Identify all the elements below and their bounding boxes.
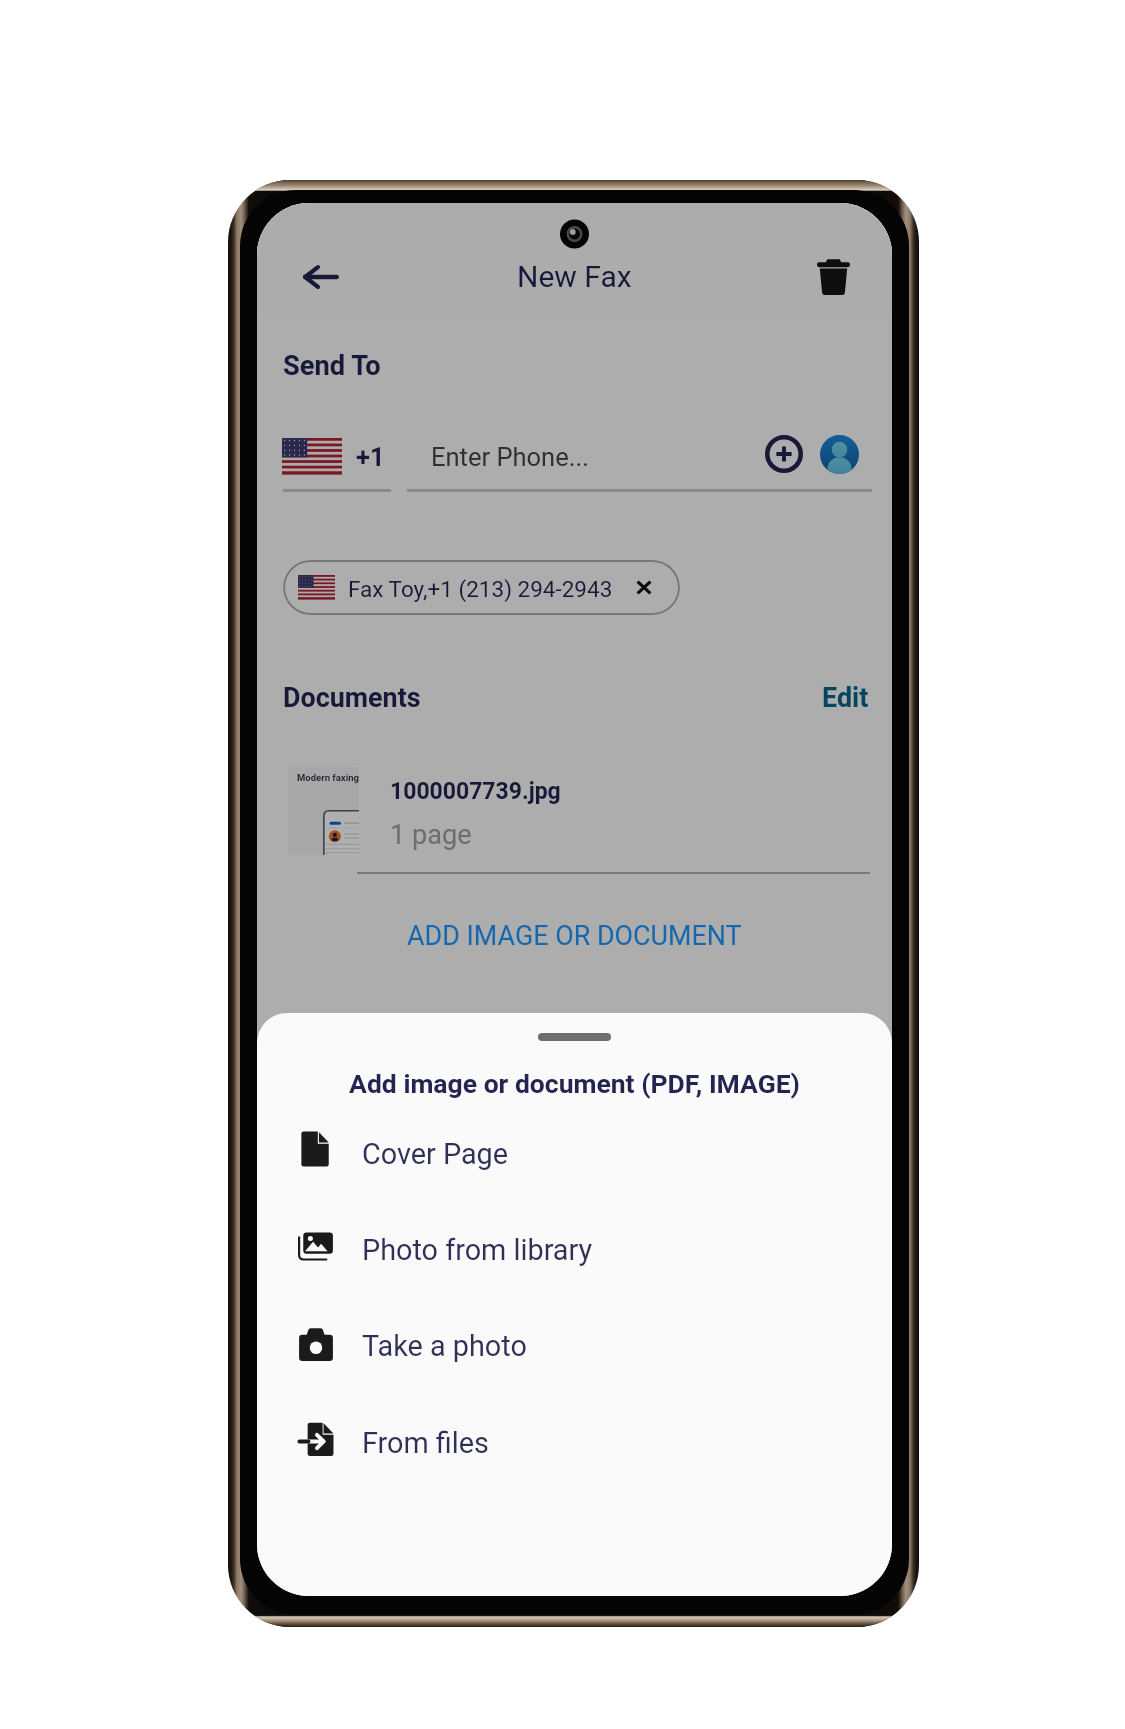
button[interactable]: Take a photo [257, 1298, 892, 1394]
button[interactable]: Add recipient [761, 431, 807, 477]
button[interactable]: Cover Page [257, 1106, 892, 1202]
staticText: Documents [283, 682, 421, 714]
staticText: ADD IMAGE OR DOCUMENT [407, 920, 742, 952]
button[interactable]: Delete fax [810, 254, 856, 300]
staticText: Send To [283, 350, 381, 382]
staticText: Modern faxing [297, 772, 359, 783]
button[interactable]: Photo from library [257, 1202, 892, 1298]
staticText: 1000007739.jpg [390, 778, 561, 805]
button[interactable]: Edit [822, 682, 869, 714]
staticText: +1 [356, 442, 385, 472]
staticText: Cover Page [362, 1137, 509, 1171]
button[interactable]: Choose contact [818, 433, 860, 475]
staticText: Photo from library [362, 1233, 593, 1267]
button[interactable]: Back [296, 254, 345, 300]
button[interactable]: ADD IMAGE OR DOCUMENT [391, 917, 758, 955]
button[interactable]: From files [257, 1395, 892, 1491]
staticText: Enter Phone... [431, 442, 589, 472]
button[interactable]: Fax Toy,+1 (213) 294-2943 [283, 560, 680, 615]
staticText: Take a photo [362, 1329, 527, 1363]
staticText: Add image or document (PDF, IMAGE) [349, 1068, 800, 1099]
staticText: Edit [822, 682, 869, 714]
staticText: Fax Toy,+1 (213) 294-2943 [348, 576, 613, 602]
staticText: From files [362, 1426, 489, 1460]
staticText: New Fax [517, 259, 632, 294]
staticText: 1 page [390, 819, 472, 851]
